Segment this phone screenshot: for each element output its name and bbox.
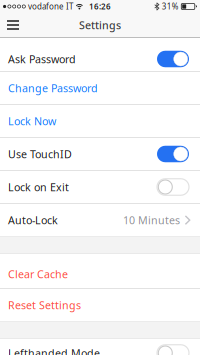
- staticText: 16:26: [89, 1, 111, 12]
- button[interactable]: Menu: [0, 15, 19, 35]
- staticText: 31%: [162, 1, 179, 12]
- staticText: 10 Minutes: [123, 213, 180, 227]
- button[interactable]: Reset Settings: [0, 289, 200, 321]
- staticText: vodafone IT: [28, 1, 73, 12]
- staticText: Ask Password: [8, 52, 76, 66]
- button[interactable]: Lock Now: [0, 105, 200, 137]
- staticText: Change Password: [8, 81, 98, 95]
- staticText: Clear Cache: [8, 267, 68, 281]
- button[interactable]: Use TouchID: [157, 146, 189, 162]
- button[interactable]: Change Password: [0, 72, 200, 104]
- staticText: Settings: [79, 18, 121, 32]
- button[interactable]: Lock on Exit: [157, 179, 189, 195]
- staticText: Lock Now: [8, 114, 56, 128]
- button[interactable]: Auto-Lock: [0, 204, 200, 236]
- staticText: Reset Settings: [8, 298, 81, 312]
- button[interactable]: Ask Password: [157, 51, 189, 67]
- button[interactable]: Clear Cache: [0, 254, 200, 288]
- staticText: Lock on Exit: [8, 180, 69, 194]
- staticText: Auto-Lock: [8, 213, 58, 227]
- button[interactable]: Lefthanded Mode: [157, 345, 189, 355]
- staticText: Lefthanded Mode: [8, 346, 100, 355]
- staticText: Use TouchID: [8, 147, 72, 161]
